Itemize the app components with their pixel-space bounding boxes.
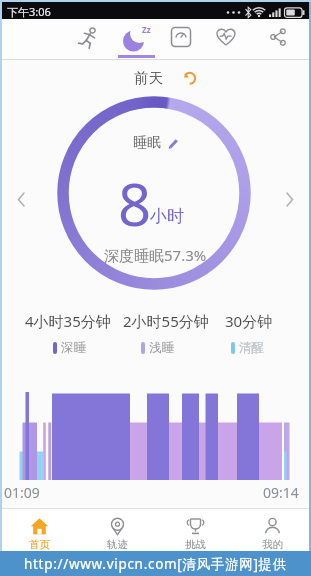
button[interactable]	[285, 192, 294, 207]
staticText: 深睡	[61, 340, 86, 356]
staticText: 浅睡	[149, 340, 174, 356]
staticText: 前天	[134, 69, 163, 87]
staticText: http://www.vipcn.com[清风手游网]提供	[24, 555, 288, 573]
staticText: 睡眠	[133, 134, 161, 152]
staticText: 09:14	[263, 483, 299, 502]
button[interactable]	[17, 192, 26, 207]
button[interactable]	[215, 26, 237, 48]
staticText: 首页	[29, 538, 50, 551]
staticText: 4小时35分钟	[25, 311, 111, 329]
button[interactable]	[182, 70, 198, 86]
staticText: 深度睡眠57.3%	[104, 245, 207, 263]
button[interactable]: 睡眠	[133, 134, 179, 152]
staticText: 30分钟	[225, 311, 273, 329]
button[interactable]	[170, 26, 192, 48]
button[interactable]	[74, 24, 102, 54]
staticText: 清醒	[239, 340, 264, 356]
staticText: 我的	[262, 538, 283, 551]
staticText: 小时	[150, 206, 184, 227]
staticText: 轨迹	[107, 538, 128, 551]
button[interactable]: 轨迹	[97, 517, 137, 557]
staticText: 2小时55分钟	[123, 311, 209, 329]
staticText: 01:09	[4, 483, 40, 502]
button[interactable]	[268, 27, 289, 47]
button[interactable]: 首页	[19, 517, 59, 557]
button[interactable]: 挑战	[175, 517, 215, 557]
button[interactable]: 我的	[252, 517, 292, 557]
staticText: Zz	[142, 24, 151, 35]
staticText: 8	[118, 164, 152, 243]
button[interactable]: Zz	[118, 22, 156, 54]
staticText: 挑战	[185, 538, 206, 551]
staticText: 下午3:06	[7, 4, 51, 19]
